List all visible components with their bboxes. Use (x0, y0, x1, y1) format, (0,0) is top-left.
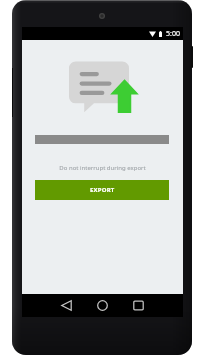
staticText: EXPORT (90, 186, 115, 194)
staticText: 5:00 (166, 29, 180, 39)
button[interactable]: EXPORT (35, 180, 169, 200)
button[interactable]: Back (56, 294, 76, 317)
staticText: Do not interrupt during export (59, 164, 146, 172)
button[interactable]: Home (92, 294, 112, 317)
button[interactable]: Recents (128, 294, 148, 317)
